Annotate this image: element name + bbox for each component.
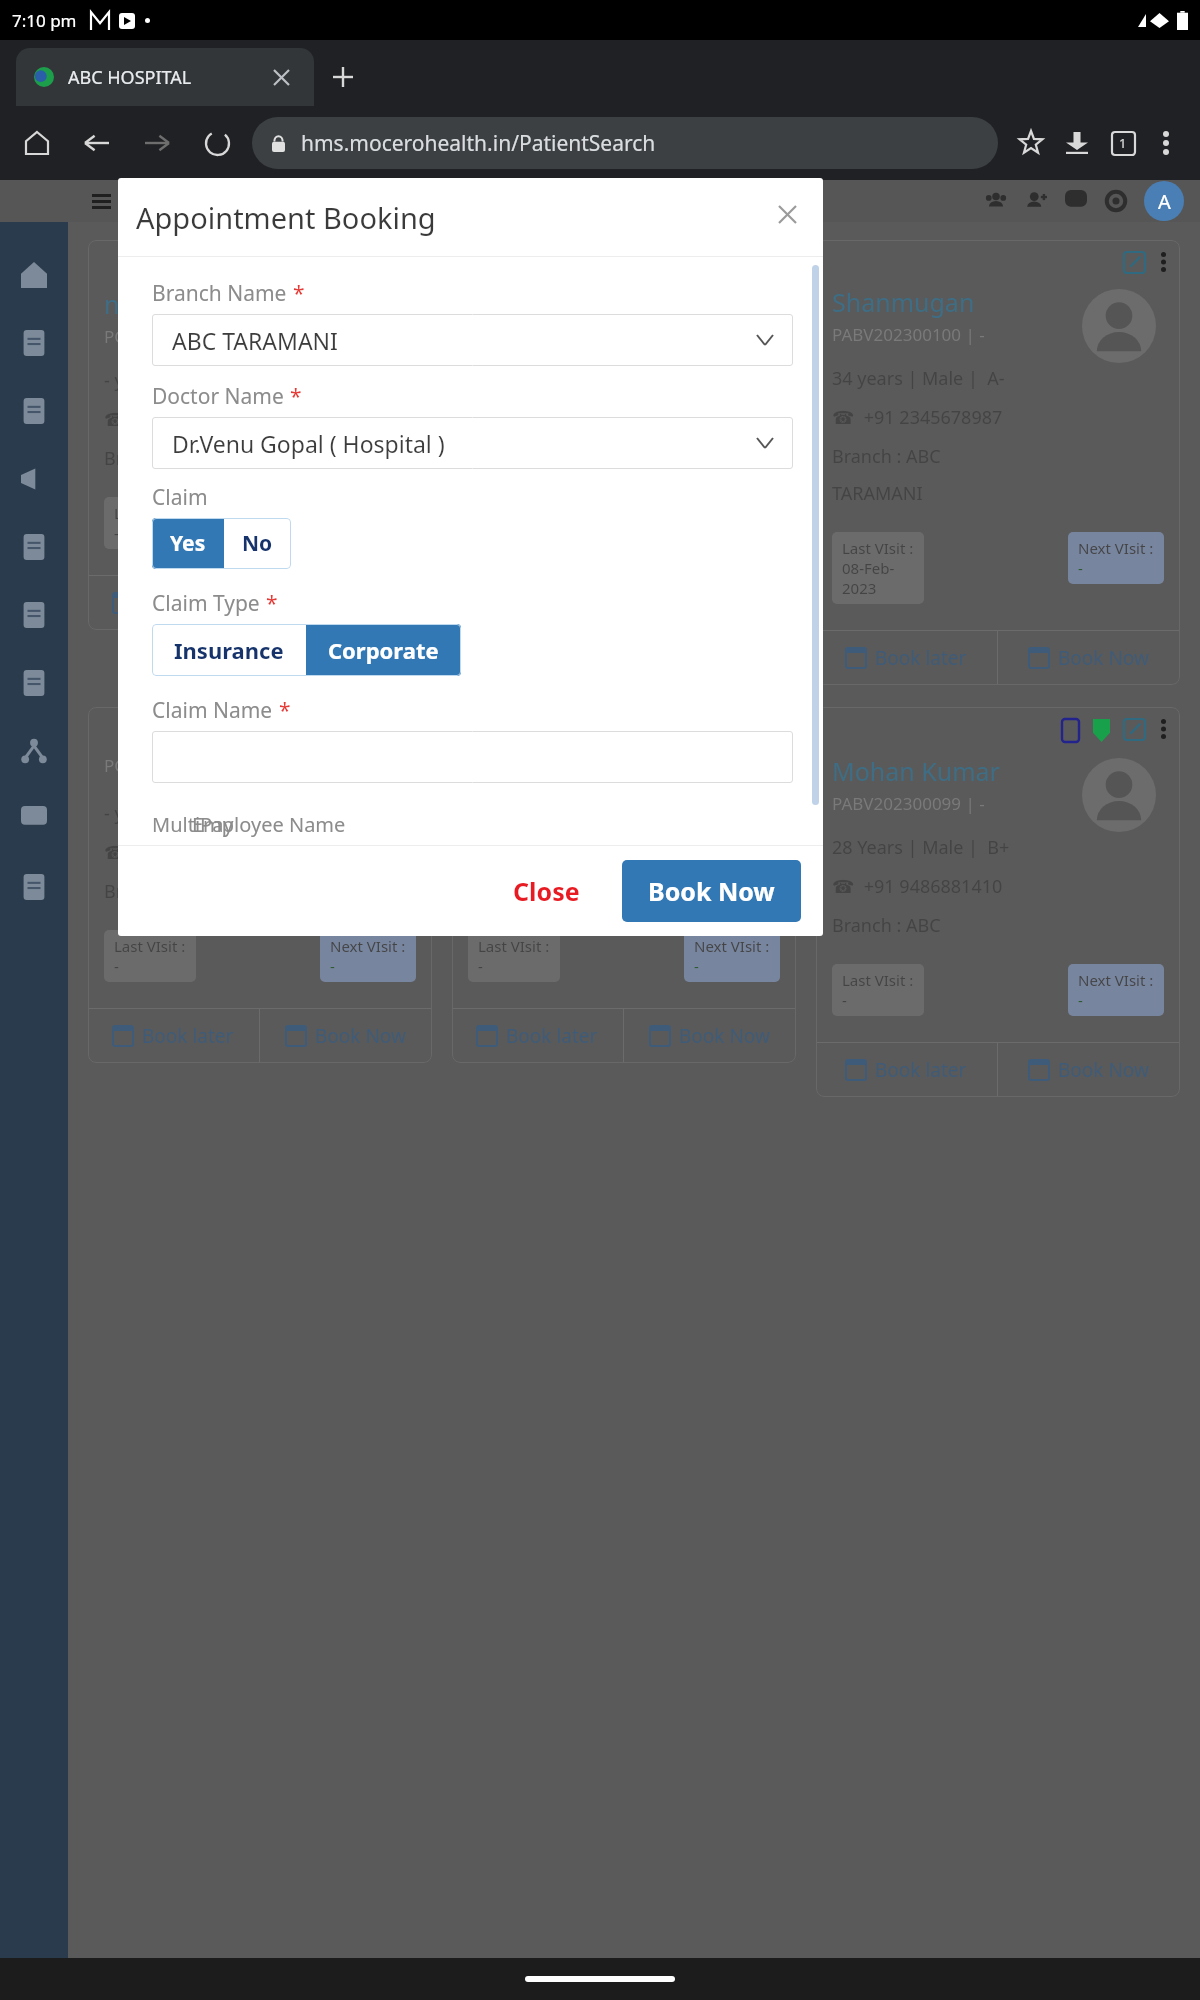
button[interactable]: ABC HOSPITAL <box>16 48 314 106</box>
button[interactable]: Download <box>1054 120 1100 166</box>
staticText: * <box>293 279 305 308</box>
button[interactable]: Menu item 4 <box>7 452 61 506</box>
button[interactable]: Dr.Venu Gopal ( Hospital ) <box>152 417 793 469</box>
button[interactable]: Back <box>74 120 120 166</box>
staticText: ABC TARAMANI <box>172 325 338 356</box>
button[interactable]: Book Now <box>260 1009 432 1063</box>
button[interactable]: PCH038945 | - <box>452 240 796 616</box>
button[interactable]: Yes <box>152 518 224 569</box>
staticText: Book Now <box>1058 645 1149 671</box>
button[interactable]: Menu item 9 <box>7 792 61 846</box>
button[interactable]: Book Now <box>998 631 1180 685</box>
button[interactable]: Search the Patients <box>132 182 382 220</box>
button[interactable]: Book later <box>452 1009 623 1063</box>
staticText: Book later <box>506 1023 598 1049</box>
button[interactable]: Menu item 8 <box>7 724 61 778</box>
button[interactable]: Menu item 1 <box>7 248 61 302</box>
staticText: Yes <box>170 529 206 558</box>
button[interactable]: Menu <box>84 184 118 218</box>
button[interactable]: A <box>1144 181 1184 221</box>
staticText: hms.mocerohealth.in/PatientSearch <box>301 129 656 158</box>
staticText: ☎ +91 8807632786 <box>104 407 275 432</box>
staticText: Insurance <box>174 635 284 665</box>
staticText: Shanmugan <box>832 285 975 319</box>
button[interactable]: New tab <box>314 48 372 106</box>
button[interactable]: Book later <box>816 631 997 685</box>
button[interactable]: Book later <box>88 576 259 630</box>
button[interactable]: Book Now <box>998 1043 1180 1097</box>
staticText: Dr.Venu Gopal ( Hospital ) <box>172 428 445 459</box>
button[interactable]: Book Now <box>260 576 432 630</box>
button[interactable]: Tabs <box>1100 120 1146 166</box>
button[interactable]: Book Now <box>624 1009 796 1063</box>
staticText: Book Now <box>1058 1057 1149 1083</box>
button[interactable]: Book later <box>88 1009 259 1063</box>
button[interactable]: null <box>88 240 432 630</box>
staticText: Mohan Kumar <box>832 754 1000 788</box>
button[interactable]: Menu item 3 <box>7 384 61 438</box>
button[interactable]: PCH038943 | - <box>452 707 796 1063</box>
staticText: Book later <box>142 1023 234 1049</box>
button[interactable]: Book Now <box>622 860 801 922</box>
staticText: Next VIsit : <box>1078 538 1154 558</box>
button[interactable]: Menu item 7 <box>7 656 61 710</box>
staticText: - <box>330 956 335 976</box>
button[interactable]: Settings <box>1096 181 1136 221</box>
staticText: ☎ +91 9486881410 <box>468 840 639 865</box>
button[interactable]: Bookmark <box>1008 120 1054 166</box>
button[interactable]: Menu item 10 <box>7 860 61 914</box>
staticText: Branch : - <box>104 879 184 904</box>
staticText: ☎ +91 9486881410 <box>832 874 1003 899</box>
button[interactable]: hms.mocerohealth.in/PatientSearch <box>252 117 998 169</box>
staticText: Last VIsit : <box>478 936 550 956</box>
button[interactable]: Reload <box>194 120 240 166</box>
button[interactable]: Menu item 6 <box>7 588 61 642</box>
staticText: Branch : - <box>468 412 548 437</box>
staticText: 28 Years | Male | B+ <box>832 835 1010 860</box>
staticText: - <box>842 990 847 1010</box>
staticText: - <box>694 956 699 976</box>
button[interactable]: Mohan Kumar <box>816 707 1180 1097</box>
button[interactable]: PCH038944 | - <box>88 707 432 1063</box>
button[interactable]: Close dialog <box>767 194 807 234</box>
button[interactable]: Corporate <box>306 624 461 676</box>
staticText: - years | - | <box>104 801 200 826</box>
button[interactable]: No <box>224 518 291 569</box>
button[interactable]: Close <box>495 862 598 920</box>
button[interactable]: Insurance <box>152 624 306 676</box>
staticText: Claim Type <box>152 589 260 618</box>
staticText: Branch : - <box>104 446 184 471</box>
staticText: TARAMANI <box>832 481 923 506</box>
staticText: * <box>290 382 302 411</box>
staticText: A <box>1158 188 1171 215</box>
button[interactable]: Add patient <box>1016 181 1056 221</box>
button[interactable]: Book later <box>816 1043 997 1097</box>
button[interactable] <box>152 731 793 783</box>
staticText: 34 years | Male | A- <box>832 366 1005 391</box>
button[interactable]: Home <box>14 120 60 166</box>
staticText: - <box>478 956 483 976</box>
staticText: Last VIsit : <box>842 970 914 990</box>
button[interactable]: More options <box>1146 123 1186 163</box>
staticText: Doctor Name <box>152 382 284 411</box>
staticText: ☎ +91 9884388175 <box>104 840 275 865</box>
staticText: 1 <box>1119 134 1127 152</box>
button[interactable]: Shanmugan <box>816 240 1180 685</box>
staticText: - <box>1078 558 1083 578</box>
staticText: 08-Feb- 2023 <box>842 558 895 598</box>
staticText: Close <box>513 874 580 908</box>
staticText: Last VIsit : <box>842 538 914 558</box>
button[interactable]: ABC TARAMANI <box>152 314 793 366</box>
button[interactable]: People <box>976 181 1016 221</box>
button[interactable]: Chat <box>1056 181 1096 221</box>
button[interactable]: Menu item 5 <box>7 520 61 574</box>
button[interactable]: Forward <box>134 120 180 166</box>
staticText: PCH038944 | - <box>104 754 220 777</box>
button[interactable]: Menu item 2 <box>7 316 61 370</box>
button[interactable]: Close tab <box>266 62 296 92</box>
